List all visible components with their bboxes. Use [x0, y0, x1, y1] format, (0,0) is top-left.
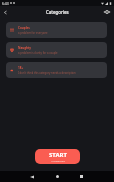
staticText: a problem for everyone: [18, 31, 48, 35]
staticText: 3 categories: [51, 159, 65, 162]
button[interactable]: START: [35, 149, 80, 164]
staticText: Naughty: [18, 46, 32, 50]
staticText: I don't think this category needs a desc…: [18, 71, 76, 75]
button[interactable]: Shuffle: [101, 6, 113, 18]
button[interactable]: Home: [56, 175, 59, 178]
button[interactable]: Back: [0, 7, 11, 18]
staticText: Couples: [18, 26, 30, 30]
staticText: 18+: [18, 66, 24, 70]
button[interactable]: Naughty: [6, 42, 107, 58]
button[interactable]: Back: [30, 175, 34, 179]
staticText: a problem is clarity for a couple: [18, 51, 58, 55]
staticText: START: [49, 151, 67, 159]
staticText: 6:43: [2, 1, 9, 6]
button[interactable]: Couples: [6, 22, 107, 38]
button[interactable]: 18+: [6, 62, 107, 78]
staticText: Categories: [46, 9, 69, 15]
